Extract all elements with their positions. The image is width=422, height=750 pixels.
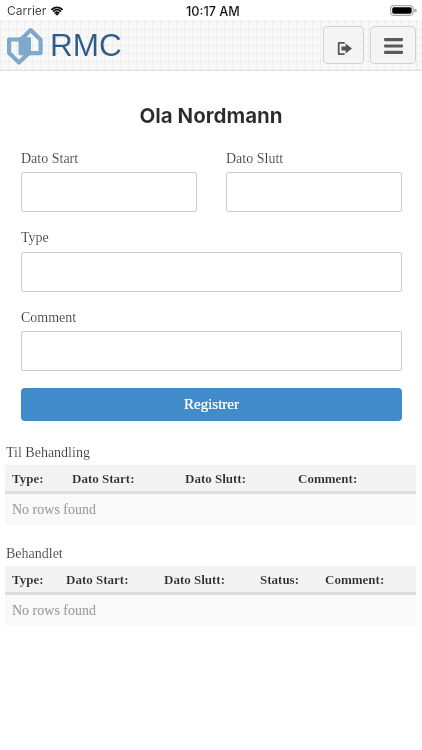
button[interactable]: Log out xyxy=(323,26,364,64)
staticText: Carrier xyxy=(7,3,47,18)
button[interactable] xyxy=(21,252,402,292)
staticText: Behandlet xyxy=(6,546,63,562)
staticText: Comment xyxy=(21,310,77,326)
staticText: Ola Nordmann xyxy=(0,103,422,128)
staticText: Registrer xyxy=(184,396,239,413)
staticText: Dato Start: xyxy=(66,572,129,586)
staticText: Dato Start: xyxy=(72,471,135,485)
staticText: Dato Start xyxy=(21,151,79,167)
button[interactable] xyxy=(21,331,402,371)
staticText: No rows found xyxy=(12,603,96,619)
staticText: Type xyxy=(21,230,49,246)
staticText: 10:17 AM xyxy=(186,4,240,19)
staticText: Comment: xyxy=(325,572,385,586)
button[interactable] xyxy=(21,172,197,212)
staticText: RMC xyxy=(50,27,122,62)
staticText: Dato Slutt xyxy=(226,151,284,167)
button[interactable]: Menu xyxy=(370,26,416,64)
staticText: Status: xyxy=(260,572,300,586)
staticText: Type: xyxy=(12,471,44,485)
staticText: Type: xyxy=(12,572,44,586)
staticText: Dato Slutt: xyxy=(185,471,247,485)
button[interactable] xyxy=(226,172,402,212)
staticText: Comment: xyxy=(298,471,358,485)
staticText: Til Behandling xyxy=(6,445,90,461)
button[interactable]: Registrer xyxy=(21,388,402,421)
staticText: No rows found xyxy=(12,502,96,518)
staticText: Dato Slutt: xyxy=(164,572,226,586)
